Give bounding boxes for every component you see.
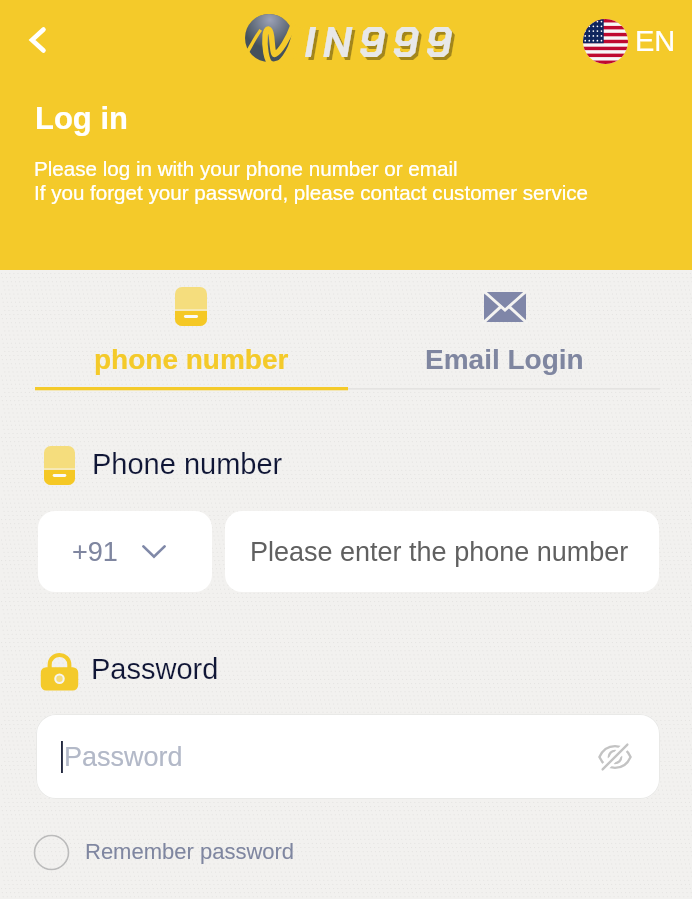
- button[interactable]: Email Login: [348, 280, 660, 388]
- staticText: Password: [91, 653, 219, 685]
- button[interactable]: Please enter the phone number: [225, 511, 659, 592]
- staticText: EN: [635, 25, 676, 57]
- button[interactable]: Remember password: [34, 835, 295, 870]
- staticText: Remember password: [85, 839, 295, 864]
- staticText: +91: [72, 537, 118, 567]
- button[interactable]: Show password: [595, 737, 635, 777]
- staticText: phone number: [94, 344, 289, 375]
- staticText: Please enter the phone number: [250, 537, 629, 567]
- button[interactable]: Password: [36, 714, 660, 799]
- staticText: Email Login: [425, 344, 584, 375]
- staticText: Phone number: [92, 448, 283, 480]
- staticText: IN999: [304, 15, 459, 70]
- staticText: IN999: [307, 18, 462, 73]
- button[interactable]: EN: [583, 19, 676, 64]
- staticText: Log in: [35, 101, 128, 136]
- staticText: Please log in with your phone number or …: [34, 157, 458, 180]
- staticText: Password: [64, 742, 183, 772]
- button[interactable]: +91: [38, 511, 212, 592]
- staticText: If you forget your password, please cont…: [34, 181, 588, 204]
- button[interactable]: Back: [8, 16, 56, 64]
- button[interactable]: phone number: [35, 280, 348, 388]
